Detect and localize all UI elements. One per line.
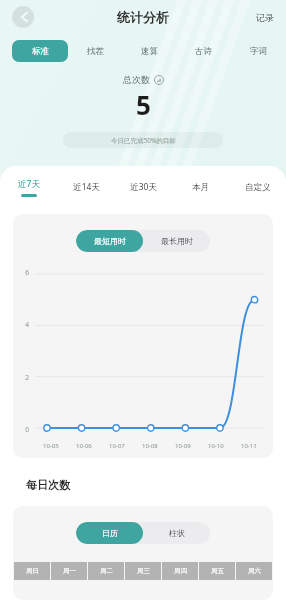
staticText: 总次数 <box>123 74 150 85</box>
staticText: 10-11 <box>241 442 257 450</box>
staticText: 本月 <box>192 182 209 193</box>
staticText: 周六 <box>248 567 261 575</box>
staticText: 字词 <box>250 46 267 57</box>
staticText: 最长用时 <box>161 236 193 246</box>
staticText: 柱状 <box>169 528 185 538</box>
staticText: 10-07 <box>109 442 125 450</box>
staticText: 找茬 <box>87 46 104 57</box>
staticText: 最短用时 <box>94 236 126 246</box>
staticText: 标准 <box>32 46 49 57</box>
staticText: 10-10 <box>208 442 224 450</box>
button[interactable]: Back <box>12 6 34 28</box>
button[interactable]: 自定义 <box>229 174 286 200</box>
staticText: 2 <box>13 373 29 382</box>
staticText: 10-05 <box>43 442 59 450</box>
staticText: 10-08 <box>142 442 158 450</box>
button[interactable]: 标准 <box>12 40 68 62</box>
button[interactable]: 记录 <box>256 12 274 23</box>
staticText: 统计分析 <box>117 9 169 25</box>
button[interactable]: 最短用时 <box>76 230 143 252</box>
staticText: 6 <box>13 268 29 277</box>
button[interactable]: 近14天 <box>58 174 115 200</box>
staticText: 每日次数 <box>26 478 70 492</box>
staticText: 周日 <box>26 567 39 575</box>
button[interactable]: 日历 <box>76 522 143 544</box>
button[interactable]: 最长用时 <box>143 230 210 252</box>
staticText: 记录 <box>256 12 274 23</box>
staticText: 4 <box>13 320 29 329</box>
staticText: 周二 <box>100 567 113 575</box>
staticText: 近30天 <box>130 181 157 193</box>
staticText: 5 <box>136 87 151 122</box>
staticText: 速算 <box>141 46 158 57</box>
button[interactable]: Chart info <box>154 75 164 85</box>
button[interactable]: 找茬 <box>68 40 122 62</box>
button[interactable]: 近7天 <box>0 174 58 200</box>
staticText: 近7天 <box>18 178 40 190</box>
staticText: 周三 <box>137 567 150 575</box>
staticText: 10-09 <box>175 442 191 450</box>
staticText: 近14天 <box>73 181 100 193</box>
staticText: 古诗 <box>195 46 212 57</box>
staticText: 周一 <box>63 567 76 575</box>
staticText: 今日已完成50%的目标 <box>111 136 176 145</box>
button[interactable]: 速算 <box>122 40 176 62</box>
button[interactable]: 字词 <box>231 40 286 62</box>
staticText: 日历 <box>102 528 118 538</box>
button[interactable]: 古诗 <box>176 40 231 62</box>
staticText: 周五 <box>211 567 224 575</box>
button[interactable]: 今日已完成50%的目标 <box>63 132 223 148</box>
staticText: 周四 <box>174 567 187 575</box>
staticText: 0 <box>13 425 29 434</box>
button[interactable]: 本月 <box>172 174 229 200</box>
button[interactable]: 柱状 <box>143 522 210 544</box>
staticText: 自定义 <box>245 182 271 193</box>
staticText: 10-06 <box>76 442 92 450</box>
button[interactable]: 近30天 <box>115 174 172 200</box>
